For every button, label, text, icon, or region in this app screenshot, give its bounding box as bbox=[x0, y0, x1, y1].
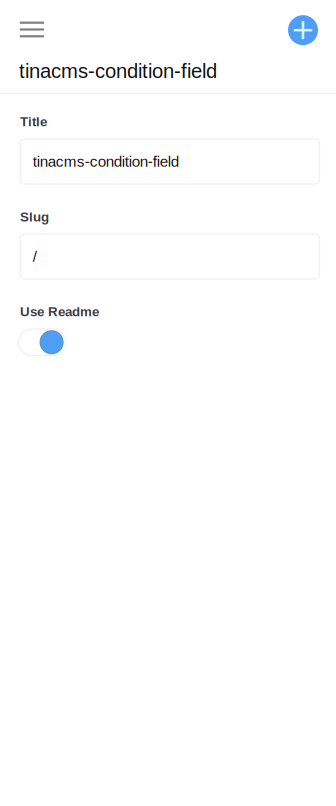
staticText: tinacms-condition-field bbox=[19, 60, 217, 82]
button[interactable]: / bbox=[20, 234, 319, 279]
button[interactable]: Menu bbox=[10, 7, 54, 51]
button[interactable]: Use Readme bbox=[18, 329, 66, 355]
staticText: tinacms-condition-field bbox=[33, 153, 179, 170]
staticText: Use Readme bbox=[20, 304, 99, 319]
staticText: / bbox=[33, 248, 37, 265]
button[interactable]: Add bbox=[283, 10, 323, 50]
button[interactable]: tinacms-condition-field bbox=[20, 139, 319, 184]
staticText: Slug bbox=[20, 209, 49, 224]
staticText: Title bbox=[20, 114, 47, 129]
